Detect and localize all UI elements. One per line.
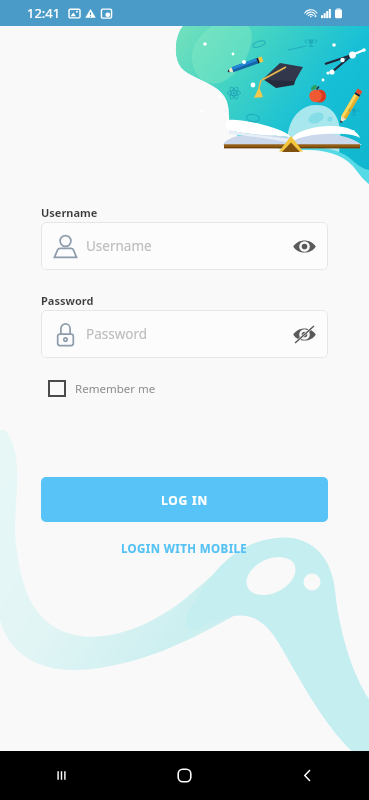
staticText: Password <box>86 325 148 343</box>
button[interactable]: Password <box>41 310 328 358</box>
button[interactable]: Back <box>246 751 369 800</box>
staticText: 12:41 <box>27 4 61 22</box>
staticText: LOG IN <box>161 492 208 508</box>
button[interactable]: Remember me <box>41 380 156 397</box>
staticText: Username <box>86 237 152 255</box>
button[interactable]: Show password <box>292 234 316 258</box>
staticText: Remember me <box>75 381 156 397</box>
button[interactable]: Home <box>123 751 246 800</box>
staticText: Username <box>41 205 98 220</box>
button[interactable]: Username <box>41 222 328 270</box>
button[interactable]: LOGIN WITH MOBILE <box>113 538 256 560</box>
staticText: Password <box>41 293 94 308</box>
button[interactable]: Hide password <box>292 322 316 346</box>
button[interactable]: LOG IN <box>41 477 328 522</box>
button[interactable]: Recents <box>0 751 123 800</box>
